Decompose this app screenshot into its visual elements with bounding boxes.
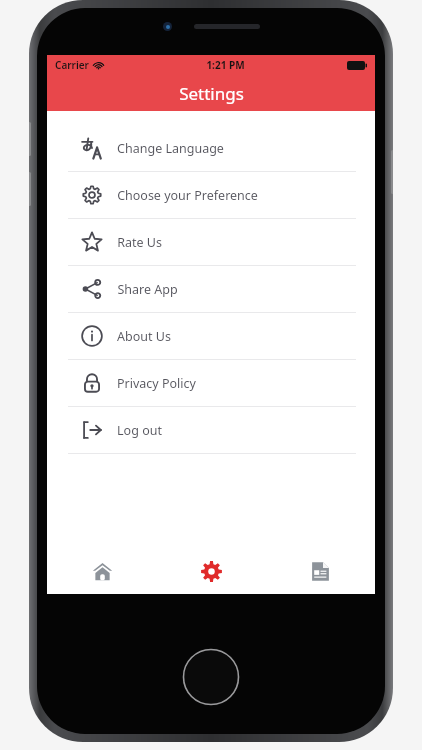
staticText: Log out <box>117 422 162 439</box>
button[interactable]: Settings <box>157 548 266 594</box>
button[interactable]: Home <box>47 548 157 594</box>
staticText: Choose your Preference <box>117 187 258 204</box>
button[interactable]: Change Language <box>47 125 375 171</box>
button[interactable]: Rate Us <box>47 219 375 265</box>
button[interactable]: Log out <box>47 407 375 453</box>
button[interactable]: News <box>266 548 375 594</box>
staticText: Privacy Policy <box>117 375 196 392</box>
staticText: Settings <box>179 82 244 105</box>
staticText: Share App <box>117 281 178 298</box>
staticText: Change Language <box>117 140 224 157</box>
staticText: 1:21 PM <box>206 58 245 72</box>
button[interactable]: Share App <box>47 266 375 312</box>
button[interactable]: Privacy Policy <box>47 360 375 406</box>
button[interactable]: Choose your Preference <box>47 172 375 218</box>
staticText: Rate Us <box>117 234 162 251</box>
button[interactable]: About Us <box>47 313 375 359</box>
staticText: Carrier <box>55 58 89 72</box>
staticText: About Us <box>117 328 171 345</box>
